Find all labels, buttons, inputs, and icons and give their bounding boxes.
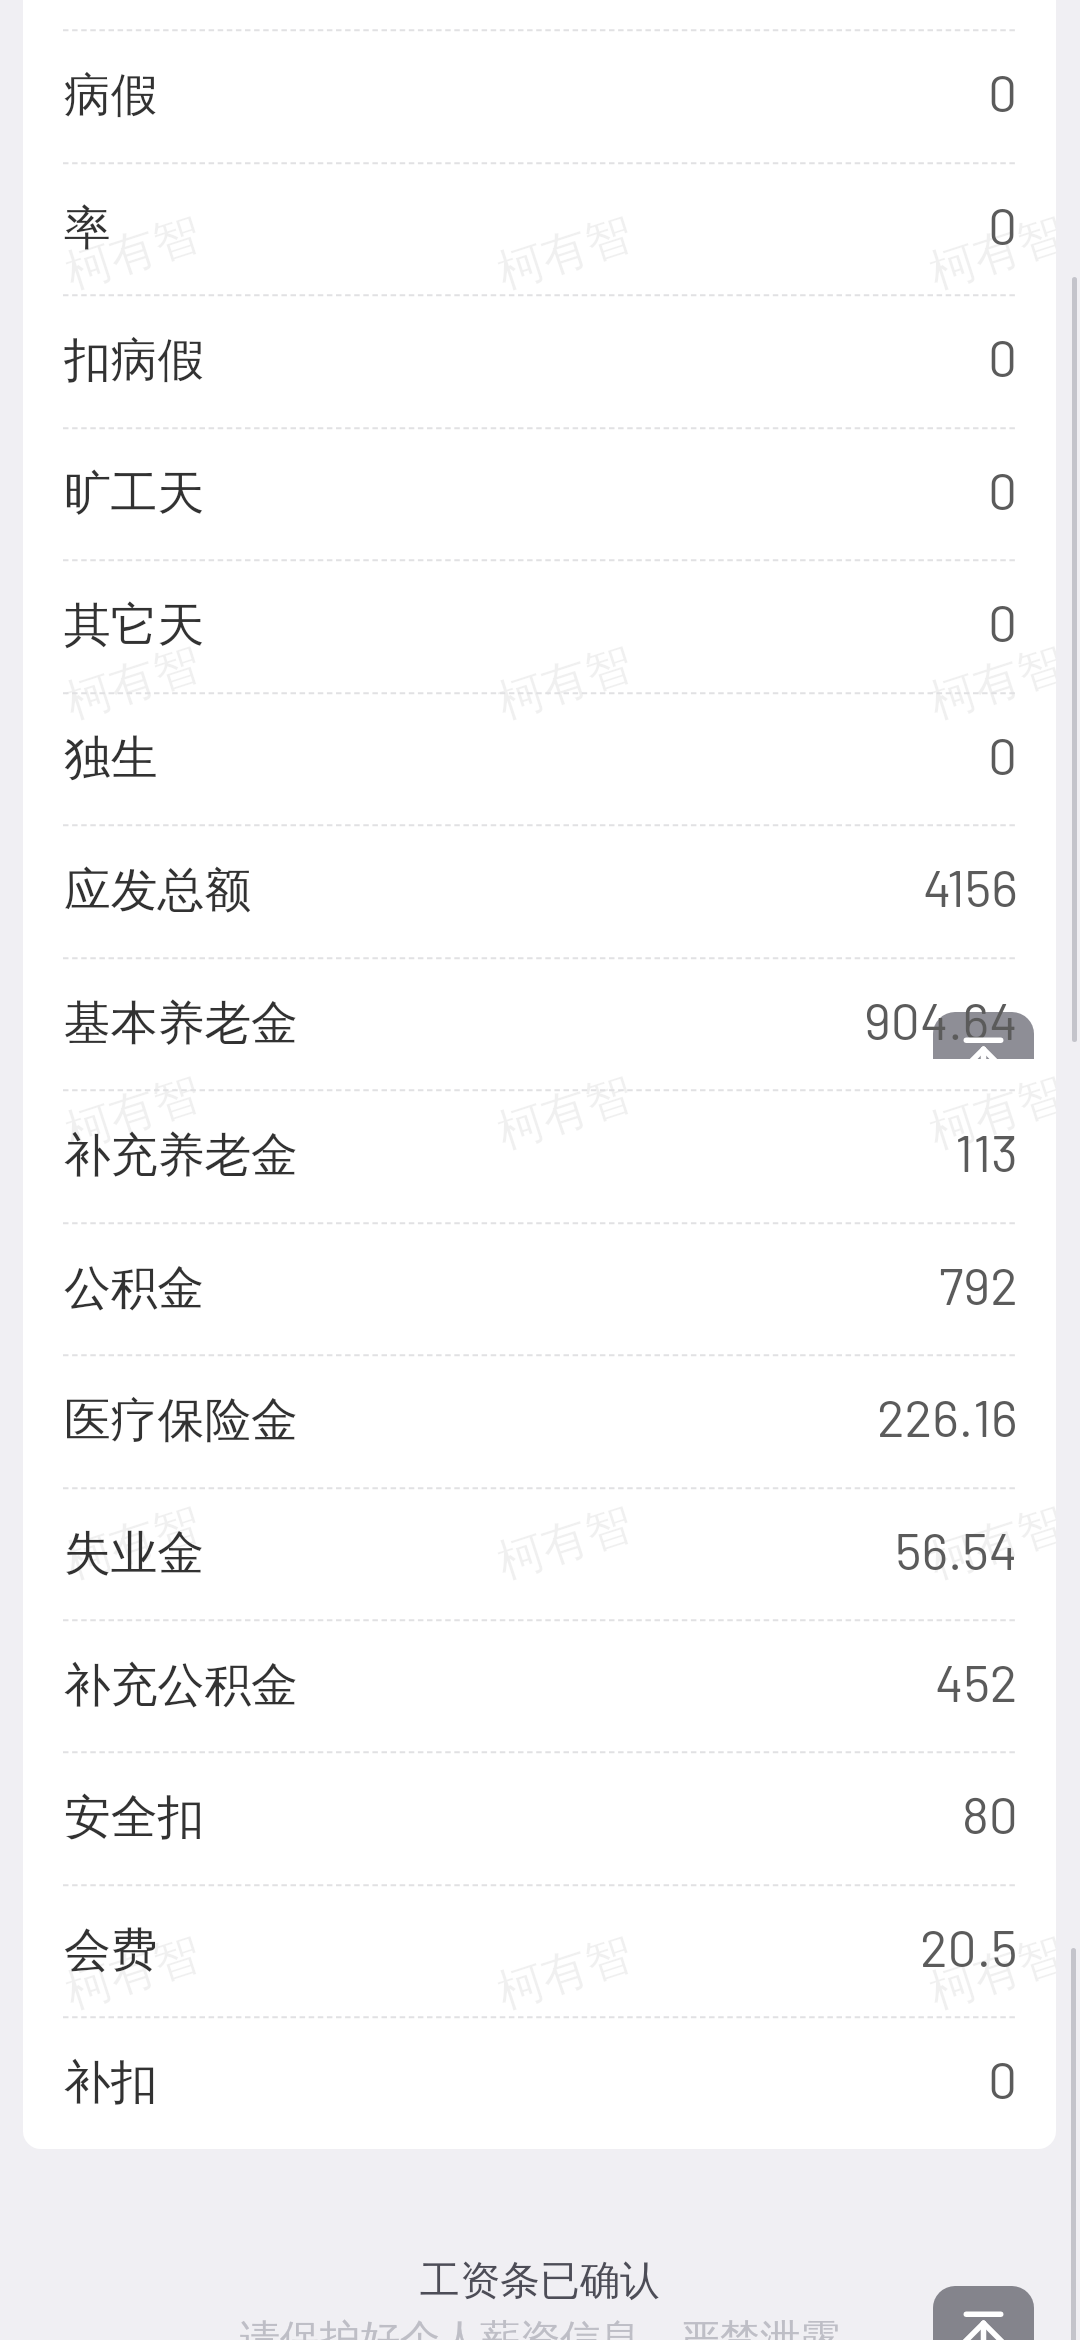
staticText: 基本养老金 [64,994,298,1053]
button[interactable]: 医疗保险金 [23,1354,1056,1486]
button[interactable]: 会费 [23,1884,1056,2016]
button[interactable]: 补扣 [23,2016,1056,2148]
staticText: 0 [988,2047,1018,2109]
staticText: 792 [939,1253,1018,1315]
staticText: 113 [955,1120,1018,1182]
staticText: 柯有智 [922,634,1056,732]
staticText: 柯有智 [58,1494,208,1592]
staticText: 柯有智 [922,1924,1056,2022]
staticText: 安全扣 [64,1788,205,1847]
staticText: 病假 [64,66,158,125]
staticText: 应发总额 [64,861,252,920]
staticText: 柯有智 [58,204,208,302]
staticText: 补充公积金 [64,1656,298,1715]
staticText: 0 [988,723,1018,785]
staticText: 柯有智 [490,1494,640,1592]
button[interactable]: 补充养老金 [23,1089,1056,1221]
staticText: 柯有智 [490,204,640,302]
staticText: 柯有智 [58,1924,208,2022]
staticText: 56.54 [895,1518,1018,1580]
button[interactable]: 旷工天 [23,427,1056,559]
staticText: 0 [988,193,1018,255]
staticText: 公积金 [64,1259,205,1318]
staticText: 旷工天 [64,464,205,523]
button[interactable]: 病假 [23,29,1056,161]
staticText: 失业金 [64,1524,205,1583]
staticText: 0 [988,60,1018,122]
staticText: 0 [988,325,1018,387]
staticText: 904.64 [864,988,1018,1050]
button[interactable]: 失业金 [23,1487,1056,1619]
staticText: 452 [935,1650,1018,1712]
staticText: 会费 [64,1921,158,1980]
staticText: 率 [64,199,111,258]
staticText: 0 [988,458,1018,520]
staticText: 柯有智 [922,1494,1056,1592]
staticText: 补扣 [64,2053,158,2112]
staticText: 柯有智 [490,1924,640,2022]
button[interactable]: 应发总额 [23,824,1056,956]
staticText: 226.16 [877,1385,1018,1447]
button[interactable]: 补充公积金 [23,1619,1056,1751]
staticText: 4156 [923,855,1018,917]
button[interactable]: 其它天 [23,559,1056,691]
button[interactable]: 基本养老金 [23,957,1056,1089]
staticText: 柯有智 [490,1064,640,1162]
staticText: 其它天 [64,596,205,655]
staticText: 扣病假 [64,331,205,390]
staticText: 柯有智 [922,204,1056,302]
staticText: 独生 [64,729,158,788]
staticText: 20.5 [920,1915,1018,1977]
button[interactable]: 扣病假 [23,294,1056,426]
staticText: 补充养老金 [64,1126,298,1185]
button[interactable]: Scroll to top [933,2286,1034,2340]
staticText: 柯有智 [922,1064,1056,1162]
button[interactable]: 公积金 [23,1222,1056,1354]
staticText: 柯有智 [58,634,208,732]
staticText: 柯有智 [490,634,640,732]
button[interactable]: 独生 [23,692,1056,824]
staticText: 80 [962,1782,1018,1844]
staticText: 0 [988,590,1018,652]
button[interactable]: 率 [23,162,1056,294]
staticText: 工资条已确认 [0,2255,1080,2305]
staticText: 请保护好个人薪资信息，严禁泄露 [0,2314,1080,2340]
button[interactable]: 安全扣 [23,1751,1056,1883]
staticText: 医疗保险金 [64,1391,298,1450]
staticText: 柯有智 [58,1064,208,1162]
